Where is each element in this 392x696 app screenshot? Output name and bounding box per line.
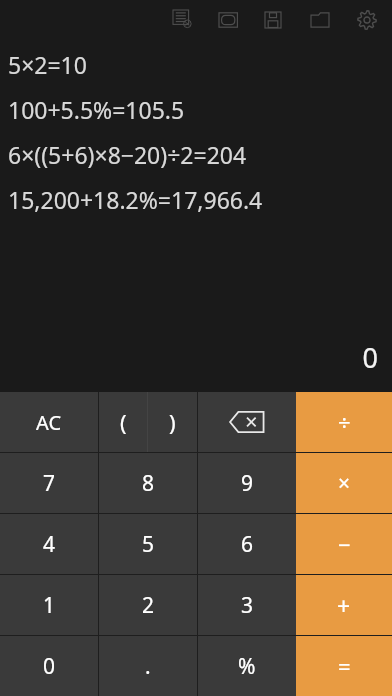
staticText: 1 (43, 591, 56, 620)
staticText: 100+5.5%=105.5 (8, 94, 185, 125)
button[interactable]: 2 (99, 575, 197, 635)
staticText: 6×((5+6)×8−20)÷2=204 (8, 139, 247, 170)
staticText: AC (36, 409, 62, 436)
button[interactable]: Save (260, 6, 290, 34)
staticText: − (338, 529, 351, 559)
staticText: 5×2=10 (8, 49, 87, 80)
staticText: 5 (142, 530, 155, 559)
staticText: . (145, 652, 151, 681)
button[interactable]: 7 (0, 453, 98, 513)
button[interactable]: 9 (198, 453, 296, 513)
staticText: ( (120, 407, 127, 437)
button[interactable]: ÷ (296, 392, 392, 452)
button[interactable]: % (198, 636, 296, 696)
button[interactable]: 4 (0, 514, 98, 574)
button[interactable]: Open (306, 6, 336, 34)
button[interactable]: 3 (198, 575, 296, 635)
button[interactable]: Settings (352, 6, 382, 34)
staticText: ÷ (338, 407, 351, 437)
button[interactable]: ) (148, 392, 197, 452)
staticText: 15,200+18.2%=17,966.4 (8, 184, 263, 215)
staticText: 9 (241, 469, 254, 498)
staticText: 8 (142, 469, 155, 498)
button[interactable]: History (168, 6, 198, 34)
staticText: 4 (43, 530, 56, 559)
button[interactable]: AC (0, 392, 98, 452)
staticText: 2 (142, 591, 155, 620)
staticText: × (338, 469, 351, 498)
staticText: % (238, 652, 256, 681)
button[interactable]: × (296, 453, 392, 513)
staticText: 3 (241, 591, 254, 620)
button[interactable]: 5 (99, 514, 197, 574)
button[interactable]: 6 (198, 514, 296, 574)
staticText: 0 (43, 652, 56, 681)
button[interactable]: ( (99, 392, 147, 452)
button[interactable]: + (296, 575, 392, 635)
staticText: ) (169, 407, 176, 437)
button[interactable]: − (296, 514, 392, 574)
button[interactable]: Display mode (214, 6, 244, 34)
button[interactable]: Backspace (198, 392, 296, 452)
button[interactable]: 1 (0, 575, 98, 635)
button[interactable]: = (296, 636, 392, 696)
staticText: 7 (43, 469, 56, 498)
staticText: 6 (241, 530, 254, 559)
button[interactable]: 8 (99, 453, 197, 513)
button[interactable]: . (99, 636, 197, 696)
button[interactable]: 0 (0, 636, 98, 696)
staticText: = (338, 651, 351, 681)
staticText: + (337, 590, 351, 621)
staticText: 0 (0, 339, 378, 376)
